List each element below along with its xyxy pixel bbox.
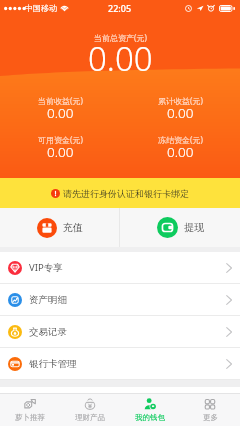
staticText: 当前收益(元) [38, 95, 83, 106]
staticText: 冻结资金(元) [158, 134, 203, 145]
button[interactable]: 理财产品 [60, 393, 120, 426]
staticText: 资产明细 [29, 294, 67, 306]
staticText: 我的钱包 [135, 413, 165, 422]
staticText: 提现 [184, 221, 204, 234]
button[interactable]: 更多 [180, 393, 240, 426]
button[interactable]: 银行卡管理 [0, 348, 240, 380]
button[interactable]: 交易记录 [0, 316, 240, 348]
staticText: 0.00 [47, 143, 74, 161]
staticText: 银行卡管理 [29, 358, 77, 370]
staticText: 可用资金(元) [38, 134, 83, 145]
staticText: 充值 [63, 221, 83, 234]
staticText: 22:05 [108, 2, 132, 14]
staticText: 交易记录 [29, 326, 67, 338]
staticText: 中国移动 [25, 3, 57, 13]
button[interactable]: 萝卜推荐 [0, 393, 60, 426]
staticText: 更多 [203, 413, 218, 422]
button[interactable]: 资产明细 [0, 284, 240, 316]
staticText: VIP专享 [29, 261, 63, 274]
button[interactable]: 提现 [120, 208, 240, 247]
staticText: 累计收益(元) [158, 95, 203, 106]
staticText: 0.00 [167, 104, 194, 122]
staticText: 请先进行身份认证和银行卡绑定 [63, 188, 189, 199]
staticText: 萝卜推荐 [15, 413, 45, 422]
button[interactable]: VIP专享 [0, 252, 240, 284]
staticText: 0.00 [47, 104, 74, 122]
button[interactable]: 我的钱包 [120, 393, 180, 426]
button[interactable]: 请先进行身份认证和银行卡绑定 [0, 178, 240, 208]
staticText: 理财产品 [75, 413, 105, 422]
staticText: 当前总资产(元) [94, 32, 147, 43]
staticText: 0.00 [167, 143, 194, 161]
staticText: 0.00 [88, 36, 153, 81]
button[interactable]: 充值 [0, 208, 119, 247]
